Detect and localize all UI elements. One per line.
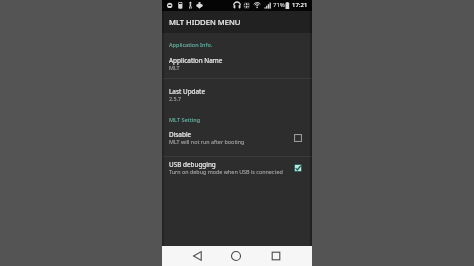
button[interactable]: Enabled checkbox	[292, 162, 304, 174]
button[interactable]: Recent apps	[263, 246, 289, 266]
staticText: Disable	[169, 130, 192, 139]
staticText: USB debugging	[169, 160, 216, 169]
button[interactable]	[162, 33, 312, 78]
staticText: MLT Setting	[169, 116, 201, 123]
button[interactable]: Disabled checkbox	[292, 132, 304, 144]
staticText: 17:21	[292, 1, 308, 9]
staticText: MLT HIDDEN MENU	[169, 17, 241, 27]
staticText: 2.5.7	[169, 95, 182, 102]
staticText: 71%	[273, 1, 285, 9]
button[interactable]	[162, 79, 312, 111]
staticText: Last Update	[169, 87, 205, 96]
button[interactable]: Back	[185, 246, 211, 266]
staticText: MLT	[169, 64, 180, 71]
staticText: Turn on debug mode when USB is connected	[169, 168, 283, 175]
staticText: Application Info.	[169, 41, 213, 48]
button[interactable]	[162, 157, 312, 187]
button[interactable]: Home	[223, 246, 249, 266]
button[interactable]	[162, 112, 312, 156]
staticText: MLT will not run after booting	[169, 138, 245, 145]
staticText: Application Name	[169, 56, 223, 65]
